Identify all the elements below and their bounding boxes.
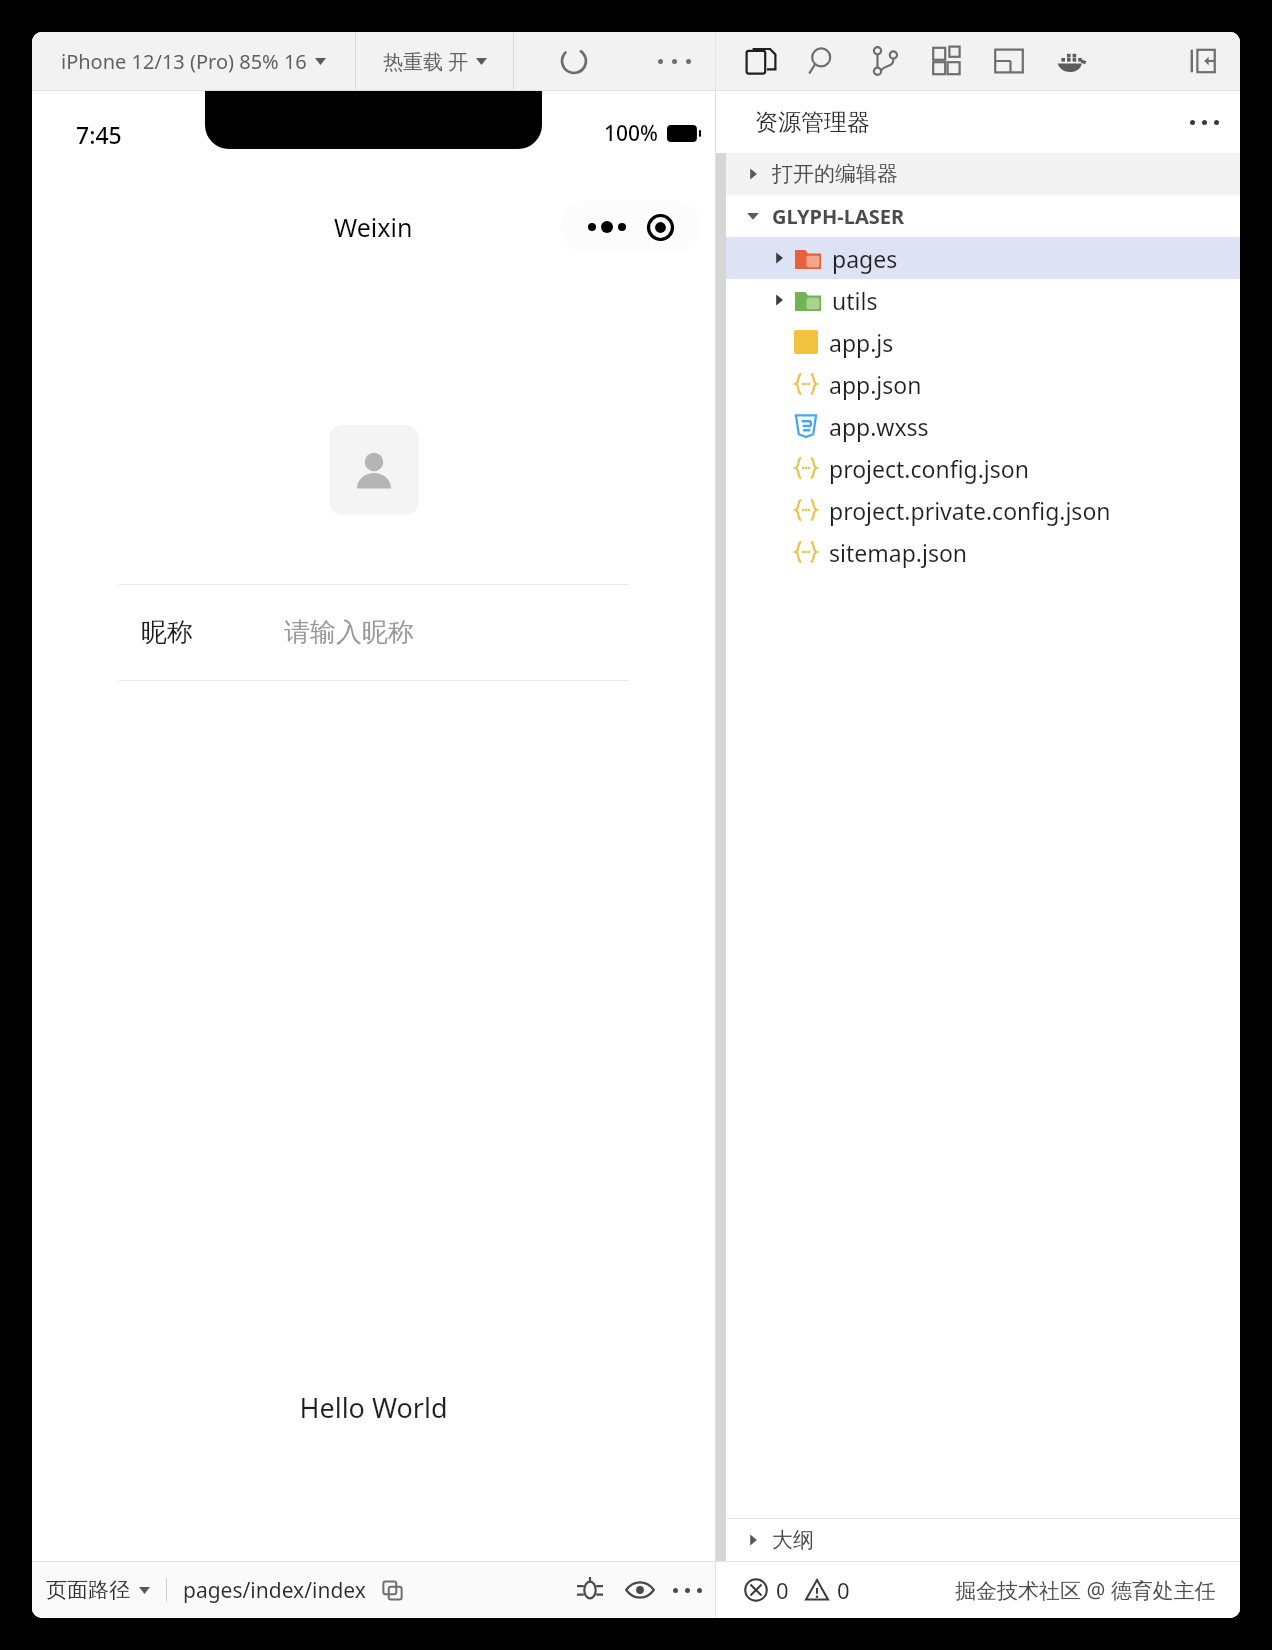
staticText: 热重载 开 [383,48,469,75]
button[interactable]: Views and more actions [1176,94,1232,150]
button[interactable]: Preview [615,1565,665,1615]
button[interactable]: More options [665,1565,709,1615]
staticText: app.json [829,369,922,400]
staticText: utils [832,285,878,316]
staticText: app.wxss [829,411,929,442]
button[interactable]: Search [792,32,854,90]
button[interactable]: 页面路径 [46,1577,150,1603]
staticText: 0 [837,1575,850,1605]
button[interactable]: Layout [978,32,1040,90]
button[interactable]: More [634,32,715,90]
staticText: 资源管理器 [755,108,870,137]
button[interactable]: Docker [1040,32,1102,90]
staticText: sitemap.json [829,537,968,568]
button[interactable]: Toggle panel [1174,32,1232,90]
staticText: pages [832,243,898,274]
staticText: app.js [829,327,894,358]
staticText: 昵称 [141,616,193,649]
staticText: 请输入昵称 [284,616,414,649]
button[interactable]: 昵称 [119,585,628,680]
staticText: 掘金技术社区 @ 德育处主任 [955,1576,1216,1605]
staticText: pages/index/index [183,1576,366,1605]
staticText: GLYPH-LASER [772,203,905,230]
button[interactable]: 大纲 [726,1519,1240,1561]
button[interactable]: Source control [854,32,916,90]
staticText: 打开的编辑器 [772,161,898,187]
button[interactable]: Explorer [730,32,792,90]
button[interactable]: Copy path [378,1576,406,1604]
staticText: Weixin [334,210,413,244]
button[interactable]: Choose avatar [329,425,419,515]
button[interactable]: GLYPH-LASER [726,195,1240,237]
button[interactable]: project.config.json [726,447,1240,489]
button[interactable]: sitemap.json [726,531,1240,573]
staticText: Hello World [32,1389,715,1426]
button[interactable]: app.json [726,363,1240,405]
button[interactable]: pages [726,237,1240,279]
staticText: project.config.json [829,453,1029,484]
staticText: 0 [776,1575,789,1605]
button[interactable]: 打开的编辑器 [726,153,1240,195]
button[interactable]: Menu and close [561,201,701,253]
staticText: project.private.config.json [829,495,1111,526]
staticText: 大纲 [772,1527,814,1553]
staticText: 100% [604,119,658,148]
button[interactable]: iPhone 12/13 (Pro) 85% 16 [32,32,355,90]
button[interactable]: app.js [726,321,1240,363]
button[interactable]: Extensions [916,32,978,90]
button[interactable]: 热重载 开 [356,32,513,90]
button[interactable]: Debug [565,1565,615,1615]
staticText: iPhone 12/13 (Pro) 85% 16 [61,48,307,75]
button[interactable]: app.wxss [726,405,1240,447]
button[interactable]: Problems [744,1575,850,1605]
button[interactable]: Refresh [514,32,634,90]
staticText: 页面路径 [46,1577,130,1603]
button[interactable]: utils [726,279,1240,321]
staticText: 7:45 [76,119,122,150]
button[interactable]: project.private.config.json [726,489,1240,531]
